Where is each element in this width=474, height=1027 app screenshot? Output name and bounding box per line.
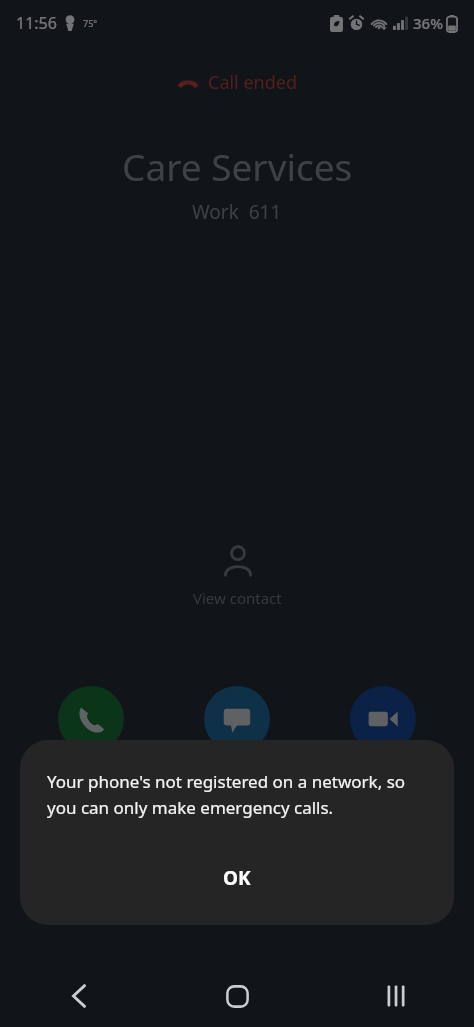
button[interactable]: Home bbox=[158, 965, 316, 1027]
staticText: Care Services bbox=[122, 141, 353, 191]
button[interactable]: Message bbox=[204, 686, 270, 752]
staticText: 36% bbox=[413, 13, 443, 33]
button[interactable]: View contact bbox=[179, 540, 296, 612]
staticText: Work 611 bbox=[192, 199, 282, 225]
button[interactable]: Video call bbox=[350, 686, 416, 752]
button[interactable]: Call bbox=[58, 686, 124, 752]
staticText: OK bbox=[223, 865, 251, 891]
button[interactable]: OK bbox=[20, 857, 454, 899]
staticText: 11:56 bbox=[16, 12, 57, 34]
staticText: Your phone's not registered on a network… bbox=[47, 770, 427, 819]
staticText: 75° bbox=[83, 17, 98, 29]
staticText: View contact bbox=[193, 588, 282, 608]
button[interactable]: Recent apps bbox=[316, 965, 474, 1027]
staticText: Call ended bbox=[208, 70, 298, 95]
button[interactable]: Back bbox=[0, 965, 158, 1027]
